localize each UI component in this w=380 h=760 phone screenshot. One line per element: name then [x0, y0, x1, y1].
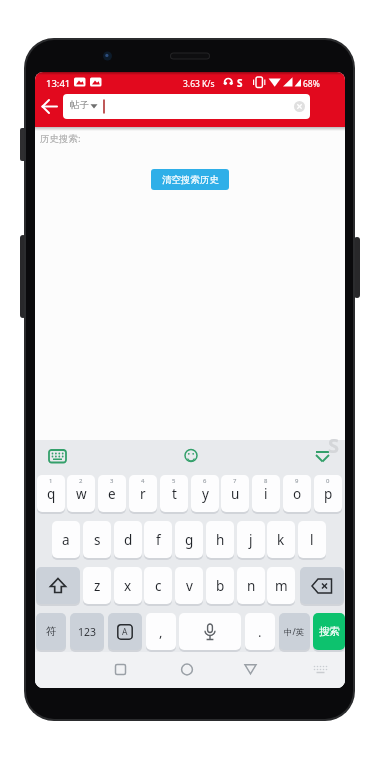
button[interactable]	[240, 659, 261, 680]
staticText: 2	[79, 477, 83, 485]
button[interactable]: b	[206, 567, 234, 604]
button[interactable]: o	[283, 475, 311, 512]
button[interactable]: u	[221, 475, 249, 512]
button[interactable]: y	[191, 475, 219, 512]
staticText: o	[293, 485, 302, 503]
button[interactable]: A	[108, 613, 142, 650]
staticText: x	[124, 577, 132, 595]
button[interactable]: z	[83, 567, 111, 604]
staticText: S	[328, 432, 340, 458]
button[interactable]	[36, 567, 80, 604]
staticText: 1	[49, 477, 53, 485]
button[interactable]: 中/英	[279, 613, 310, 650]
staticText: l	[310, 531, 314, 549]
button[interactable]	[310, 444, 336, 470]
staticText: 符	[46, 625, 57, 638]
button[interactable]: d	[114, 521, 142, 558]
button[interactable]: 清空搜索历史	[151, 169, 229, 190]
staticText: 7	[233, 477, 237, 485]
button[interactable]	[110, 659, 131, 680]
button[interactable]: p	[314, 475, 342, 512]
staticText: w	[76, 485, 87, 503]
staticText: z	[94, 577, 101, 595]
button[interactable]: m	[267, 567, 295, 604]
button[interactable]: 搜索	[313, 613, 345, 650]
staticText: n	[247, 577, 256, 595]
staticText: k	[277, 531, 285, 549]
button[interactable]: q	[37, 475, 65, 512]
staticText: .	[258, 623, 262, 641]
staticText: s	[94, 531, 101, 549]
staticText: 历史搜索:	[40, 132, 81, 145]
button[interactable]: f	[144, 521, 172, 558]
staticText: t	[172, 485, 177, 503]
button[interactable]: n	[237, 567, 265, 604]
staticText: 搜索	[319, 625, 340, 638]
button[interactable]: a	[52, 521, 80, 558]
staticText: p	[324, 485, 333, 503]
staticText: u	[231, 485, 240, 503]
staticText: 5	[172, 477, 176, 485]
staticText: b	[216, 577, 225, 595]
staticText: y	[202, 485, 209, 503]
button[interactable]: w	[67, 475, 95, 512]
button[interactable]: j	[237, 521, 265, 558]
button[interactable]: c	[144, 567, 172, 604]
staticText: A	[122, 626, 128, 638]
staticText: a	[62, 531, 70, 549]
staticText: 123	[78, 625, 97, 639]
button[interactable]: 123	[70, 613, 104, 650]
staticText: 中/英	[284, 626, 305, 638]
staticText: v	[186, 577, 193, 595]
staticText: i	[264, 485, 268, 503]
staticText: 13:41	[46, 77, 71, 89]
staticText: ,	[159, 623, 163, 641]
staticText: 0	[326, 477, 330, 485]
button[interactable]: g	[175, 521, 203, 558]
button[interactable]	[309, 661, 332, 678]
staticText: 3.63 K/s	[183, 78, 215, 89]
staticText: j	[249, 531, 253, 549]
staticText: f	[156, 531, 161, 549]
staticText: 68%	[303, 78, 320, 89]
staticText: 3	[110, 477, 114, 485]
staticText: e	[108, 485, 116, 503]
staticText: h	[216, 531, 225, 549]
staticText: 清空搜索历史	[162, 174, 219, 186]
staticText: S	[237, 76, 243, 90]
staticText: c	[155, 577, 162, 595]
staticText: m	[275, 577, 288, 595]
staticText: q	[47, 485, 56, 503]
button[interactable]: l	[298, 521, 326, 558]
button[interactable]	[179, 613, 241, 650]
button[interactable]	[39, 96, 61, 118]
button[interactable]: k	[267, 521, 295, 558]
button[interactable]	[288, 95, 310, 118]
button[interactable]: 帖子	[63, 94, 310, 119]
button[interactable]: s	[83, 521, 111, 558]
staticText: r	[140, 485, 146, 503]
staticText: 4	[141, 477, 145, 485]
staticText: 帖子	[70, 99, 89, 111]
staticText: 8	[264, 477, 268, 485]
button[interactable]: v	[175, 567, 203, 604]
button[interactable]: i	[252, 475, 280, 512]
staticText: 6	[203, 477, 207, 485]
button[interactable]: t	[160, 475, 188, 512]
button[interactable]: r	[129, 475, 157, 512]
button[interactable]: 符	[36, 613, 66, 650]
button[interactable]	[43, 444, 73, 470]
staticText: g	[185, 531, 194, 549]
button[interactable]: h	[206, 521, 234, 558]
button[interactable]	[178, 444, 204, 470]
button[interactable]: ,	[146, 613, 176, 650]
button[interactable]: e	[98, 475, 126, 512]
button[interactable]: .	[245, 613, 275, 650]
button[interactable]: x	[114, 567, 142, 604]
staticText: d	[124, 531, 133, 549]
button[interactable]	[300, 567, 344, 604]
button[interactable]	[65, 94, 103, 119]
button[interactable]	[176, 659, 197, 680]
staticText: 9	[295, 477, 299, 485]
